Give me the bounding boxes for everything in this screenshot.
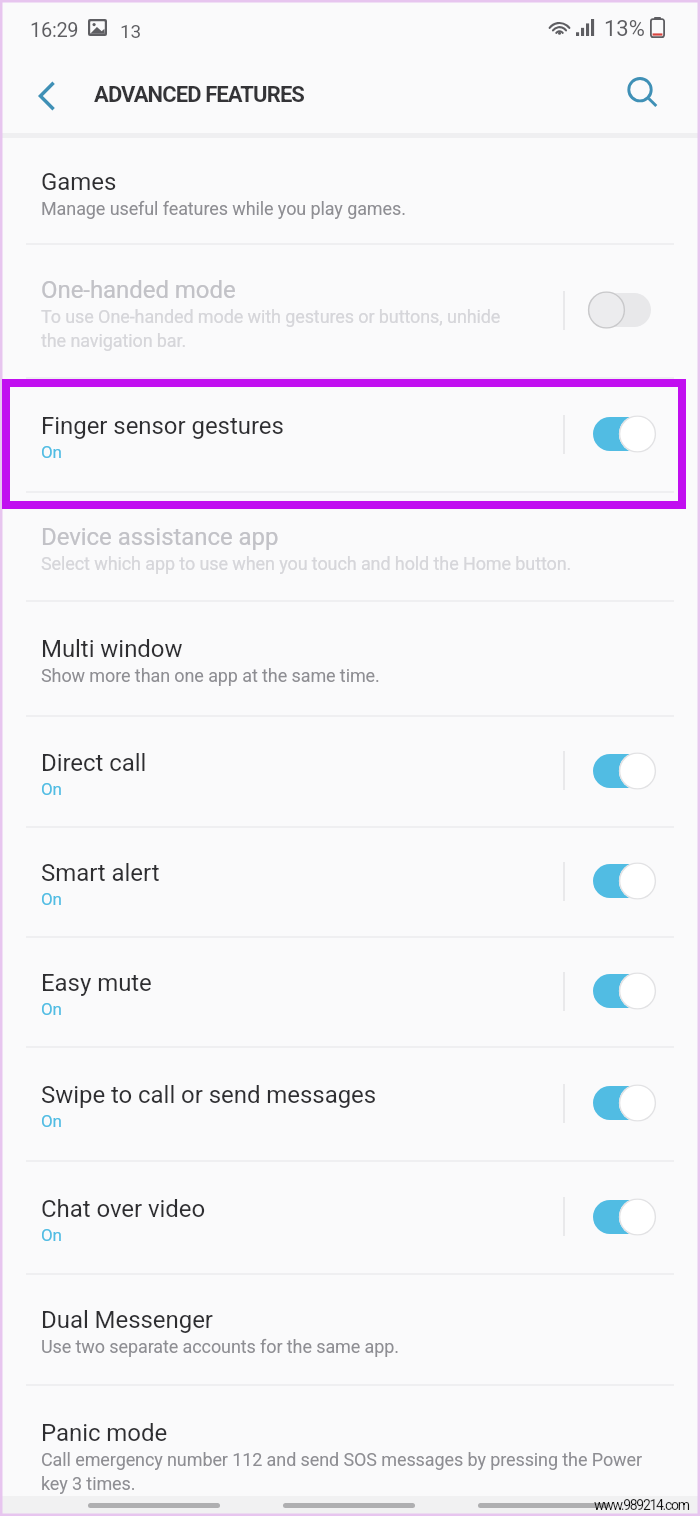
staticText: On [41, 779, 553, 799]
staticText: Multi window [41, 635, 183, 663]
button[interactable]: Multi window [0, 600, 700, 715]
staticText: Direct call [41, 749, 147, 777]
staticText: Show more than one app at the same time. [41, 665, 651, 686]
staticText: Chat over video [41, 1195, 206, 1223]
staticText: Games [41, 168, 117, 196]
staticText: Select which app to use when you touch a… [41, 553, 651, 574]
button[interactable]: Panic mode [0, 1384, 700, 1516]
button[interactable]: Device assistance app [0, 491, 700, 600]
staticText: Smart alert [41, 859, 160, 887]
button[interactable]: Turn off [593, 414, 655, 454]
button[interactable]: Search [614, 65, 670, 121]
staticText: On [41, 1111, 553, 1131]
button[interactable]: Swipe to call or send messages [0, 1046, 700, 1160]
staticText: Dual Messenger [41, 1306, 213, 1334]
button[interactable]: Back [19, 68, 75, 124]
button[interactable]: Recents [88, 1503, 220, 1508]
staticText: On [41, 999, 553, 1019]
button[interactable]: Smart alert [0, 826, 700, 936]
button[interactable]: Games [0, 138, 700, 243]
button[interactable]: Direct call [0, 715, 700, 826]
staticText: Use two separate accounts for the same a… [41, 1336, 651, 1357]
staticText: Panic mode [41, 1419, 168, 1447]
button[interactable]: Dual Messenger [0, 1273, 700, 1384]
staticText: On [41, 1225, 553, 1245]
staticText: 13 [120, 20, 141, 42]
button[interactable]: One-handed mode [0, 243, 700, 377]
staticText: Call emergency number 112 and send SOS m… [41, 1449, 655, 1494]
button[interactable]: Finger sensor gestures [0, 377, 700, 491]
staticText: 16:29 [30, 18, 79, 41]
button[interactable]: Turn off [593, 1197, 655, 1237]
staticText: On [41, 442, 553, 462]
staticText: Finger sensor gestures [41, 412, 284, 440]
button[interactable]: Turn off [593, 751, 655, 791]
button[interactable]: Home [283, 1503, 415, 1508]
staticText: ADVANCED FEATURES [94, 82, 305, 108]
button[interactable]: Back [478, 1503, 610, 1508]
button[interactable]: Easy mute [0, 936, 700, 1046]
staticText: To use One-handed mode with gestures or … [41, 306, 511, 351]
button[interactable]: Turn off [593, 1083, 655, 1123]
staticText: 13% [604, 16, 645, 42]
button[interactable]: Turn off [593, 971, 655, 1011]
staticText: Device assistance app [41, 523, 279, 551]
staticText: www.989214.com [594, 1497, 689, 1513]
staticText: Swipe to call or send messages [41, 1081, 377, 1109]
staticText: Easy mute [41, 969, 152, 997]
staticText: One-handed mode [41, 276, 236, 304]
button[interactable]: Turn on [593, 290, 655, 330]
button[interactable]: Chat over video [0, 1160, 700, 1273]
button[interactable]: Turn off [593, 861, 655, 901]
staticText: On [41, 889, 553, 909]
staticText: Manage useful features while you play ga… [41, 198, 651, 219]
